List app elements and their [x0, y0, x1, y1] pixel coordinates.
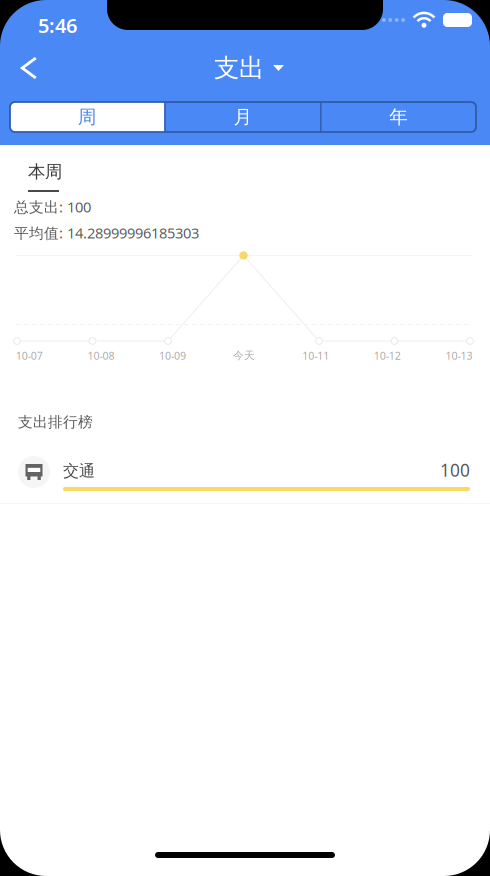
staticText: 今天: [233, 349, 255, 362]
staticText: 10-12: [374, 348, 401, 363]
button[interactable]: 支出: [214, 46, 284, 90]
staticText: 平均值: 14.28999996185303: [14, 223, 199, 242]
staticText: 10-11: [302, 348, 329, 363]
staticText: 10-08: [87, 348, 114, 363]
staticText: 支出排行榜: [18, 413, 93, 431]
staticText: 100: [440, 458, 470, 481]
staticText: 10-09: [159, 348, 186, 363]
staticText: 周: [78, 105, 97, 128]
button[interactable]: 本周: [28, 159, 88, 199]
button[interactable]: 交通: [0, 450, 490, 506]
staticText: 交通: [63, 461, 95, 481]
staticText: 支出: [214, 52, 264, 83]
button[interactable]: 周: [10, 102, 164, 132]
button[interactable]: Back: [6, 46, 50, 90]
staticText: 年: [389, 105, 408, 128]
staticText: 10-13: [445, 348, 472, 363]
staticText: 本周: [28, 161, 62, 182]
staticText: 5:46: [38, 12, 77, 39]
staticText: 总支出: 100: [14, 197, 91, 216]
staticText: 月: [233, 105, 252, 128]
button[interactable]: 月: [166, 102, 320, 132]
button[interactable]: 年: [322, 102, 476, 132]
staticText: 10-07: [16, 348, 43, 363]
